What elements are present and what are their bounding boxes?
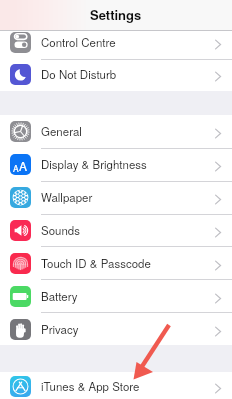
button[interactable]: Privacy [0, 318, 232, 340]
staticText: Privacy [41, 321, 79, 337]
button[interactable]: iTunes & App Store [0, 375, 232, 397]
button[interactable]: Touch ID & Passcode [0, 252, 232, 274]
button[interactable]: Sounds [0, 219, 232, 241]
other: Control Centre [10, 32, 31, 53]
staticText: Settings [90, 5, 142, 24]
staticText: Display & Brightness [41, 156, 147, 172]
staticText: Touch ID & Passcode [41, 255, 151, 271]
staticText: Control Centre [41, 34, 116, 50]
button[interactable]: Control Centre [0, 31, 232, 53]
staticText: A [13, 162, 19, 174]
staticText: A [19, 157, 28, 174]
button[interactable]: General [0, 120, 232, 142]
staticText: General [41, 123, 82, 139]
button[interactable]: Wallpaper [0, 186, 232, 208]
staticText: Sounds [41, 222, 80, 238]
staticText: iTunes & App Store [41, 378, 140, 394]
button[interactable]: Battery [0, 285, 232, 307]
staticText: Wallpaper [41, 189, 93, 205]
staticText: Battery [41, 288, 78, 304]
staticText: Do Not Disturb [41, 66, 117, 82]
button[interactable]: Do Not Disturb [0, 63, 232, 85]
button[interactable]: A [0, 153, 232, 175]
